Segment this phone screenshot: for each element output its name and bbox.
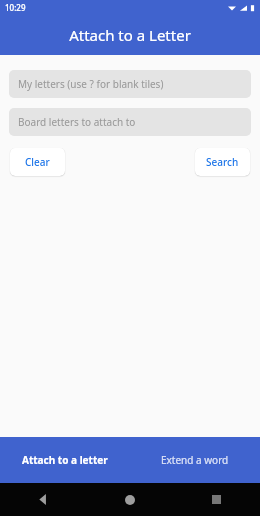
staticText: Extend a word	[161, 453, 229, 467]
button[interactable]: Clear	[10, 148, 65, 176]
button[interactable]: My letters (use ? for blank tiles)	[9, 70, 251, 98]
staticText: My letters (use ? for blank tiles)	[18, 77, 164, 91]
button[interactable]: Back	[0, 483, 86, 516]
staticText: Search	[206, 155, 239, 169]
button[interactable]: Board letters to attach to	[9, 108, 251, 136]
button[interactable]: Search	[195, 148, 250, 176]
button[interactable]: Recent apps	[173, 483, 260, 516]
staticText: 10:29	[5, 2, 26, 13]
button[interactable]: Extend a word	[130, 437, 260, 483]
button[interactable]: Attach to a letter	[0, 437, 130, 483]
staticText: Clear	[25, 155, 50, 169]
staticText: Board letters to attach to	[18, 115, 136, 129]
staticText: Attach to a letter	[22, 453, 108, 467]
button[interactable]: Home	[86, 483, 173, 516]
staticText: Attach to a Letter	[69, 25, 191, 45]
